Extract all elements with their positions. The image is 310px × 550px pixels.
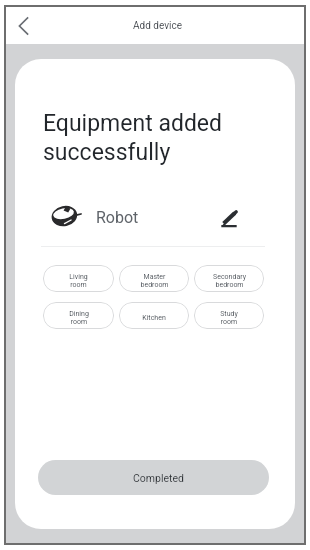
- button[interactable]: Kitchen: [119, 302, 189, 329]
- button[interactable]: Back: [9, 12, 37, 40]
- staticText: Equipment added successfully: [43, 110, 223, 166]
- staticText: Kitchen: [142, 314, 166, 322]
- staticText: Master bedroom: [140, 273, 169, 289]
- staticText: Study room: [220, 310, 238, 326]
- staticText: Robot: [96, 208, 139, 227]
- staticText: Secondary bedroom: [213, 273, 246, 289]
- staticText: Add device: [133, 20, 182, 32]
- button[interactable]: Study room: [194, 302, 264, 329]
- staticText: Living room: [69, 273, 88, 289]
- button[interactable]: Edit name: [216, 206, 242, 232]
- button[interactable]: Living room: [43, 265, 114, 292]
- button[interactable]: Secondary bedroom: [194, 265, 264, 292]
- button[interactable]: Master bedroom: [119, 265, 189, 292]
- button[interactable]: Dining room: [43, 302, 114, 329]
- staticText: Dining room: [69, 310, 89, 326]
- button[interactable]: Completed: [38, 460, 269, 495]
- staticText: Completed: [133, 472, 184, 484]
